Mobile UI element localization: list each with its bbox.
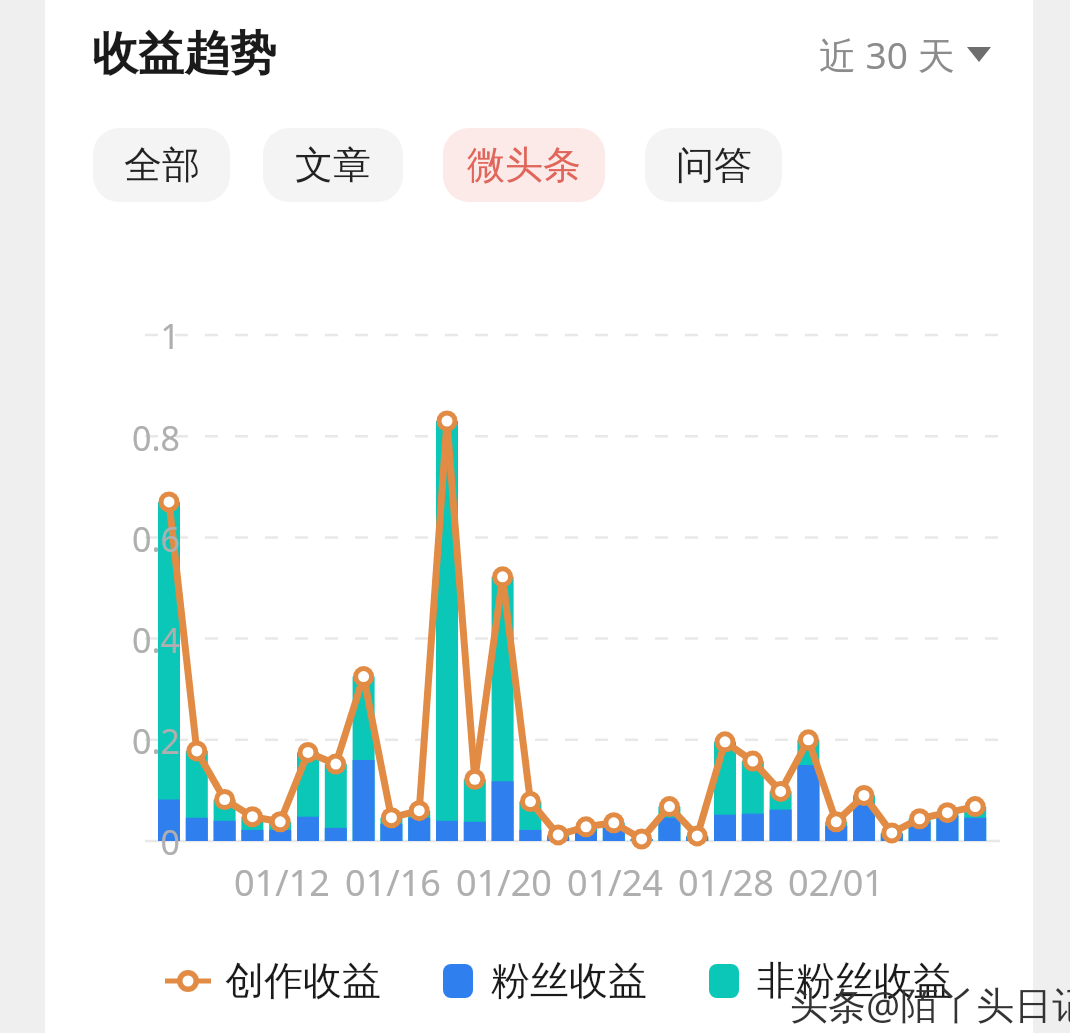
staticText: 02/01 [766,858,906,907]
staticText: 收益趋势 [92,25,276,83]
button[interactable]: 全部 [93,128,230,202]
button[interactable]: 创作收益 [165,948,381,1013]
staticText: 01/12 [212,858,352,907]
staticText: 01/16 [323,858,463,907]
staticText: 微头条 [467,141,581,189]
button[interactable]: 非粉丝收益 [709,948,952,1013]
staticText: 头条@陌丫头日记 [790,978,1070,1030]
staticText: 01/20 [434,858,574,907]
staticText: 0.8 [90,415,180,461]
staticText: 文章 [295,141,371,189]
other: 收益趋势图表 [45,0,1033,1033]
button[interactable]: 微头条 [443,128,605,202]
staticText: 0 [90,819,180,865]
staticText: 01/24 [545,858,685,907]
staticText: 全部 [124,141,200,189]
staticText: 问答 [676,141,752,189]
button[interactable]: 问答 [645,128,782,202]
staticText: 近 30 天 [819,29,955,80]
staticText: 1 [90,313,180,359]
button[interactable]: 文章 [263,128,403,202]
staticText: 粉丝收益 [491,956,647,1005]
staticText: 0.6 [90,516,180,562]
button[interactable]: 粉丝收益 [443,948,647,1013]
button[interactable]: 近 30 天 [805,22,1005,86]
staticText: 0.2 [90,718,180,764]
staticText: 0.4 [90,617,180,663]
staticText: 非粉丝收益 [757,956,952,1005]
staticText: 创作收益 [225,956,381,1005]
staticText: 01/28 [656,858,796,907]
